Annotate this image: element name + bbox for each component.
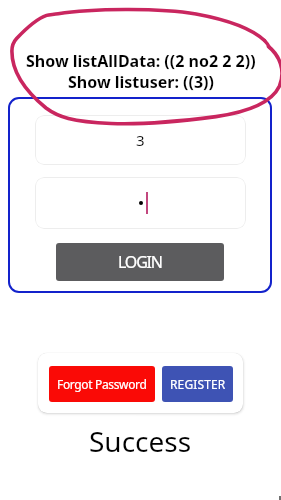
staticText: Success xyxy=(89,422,192,460)
staticText: Show listAllData: ((2 no2 2 2)) xyxy=(26,50,256,72)
button[interactable]: Forgot Password xyxy=(49,366,155,402)
staticText: LOGIN xyxy=(118,251,162,273)
staticText: REGISTER xyxy=(170,376,226,392)
button[interactable]: Password xyxy=(35,177,246,229)
button[interactable]: 3 xyxy=(35,115,246,165)
staticText: Forgot Password xyxy=(57,376,147,392)
button[interactable]: REGISTER xyxy=(162,366,233,402)
staticText: Show listuser: ((3)) xyxy=(68,71,214,93)
button[interactable]: LOGIN xyxy=(56,243,224,281)
staticText: 3 xyxy=(136,130,145,150)
